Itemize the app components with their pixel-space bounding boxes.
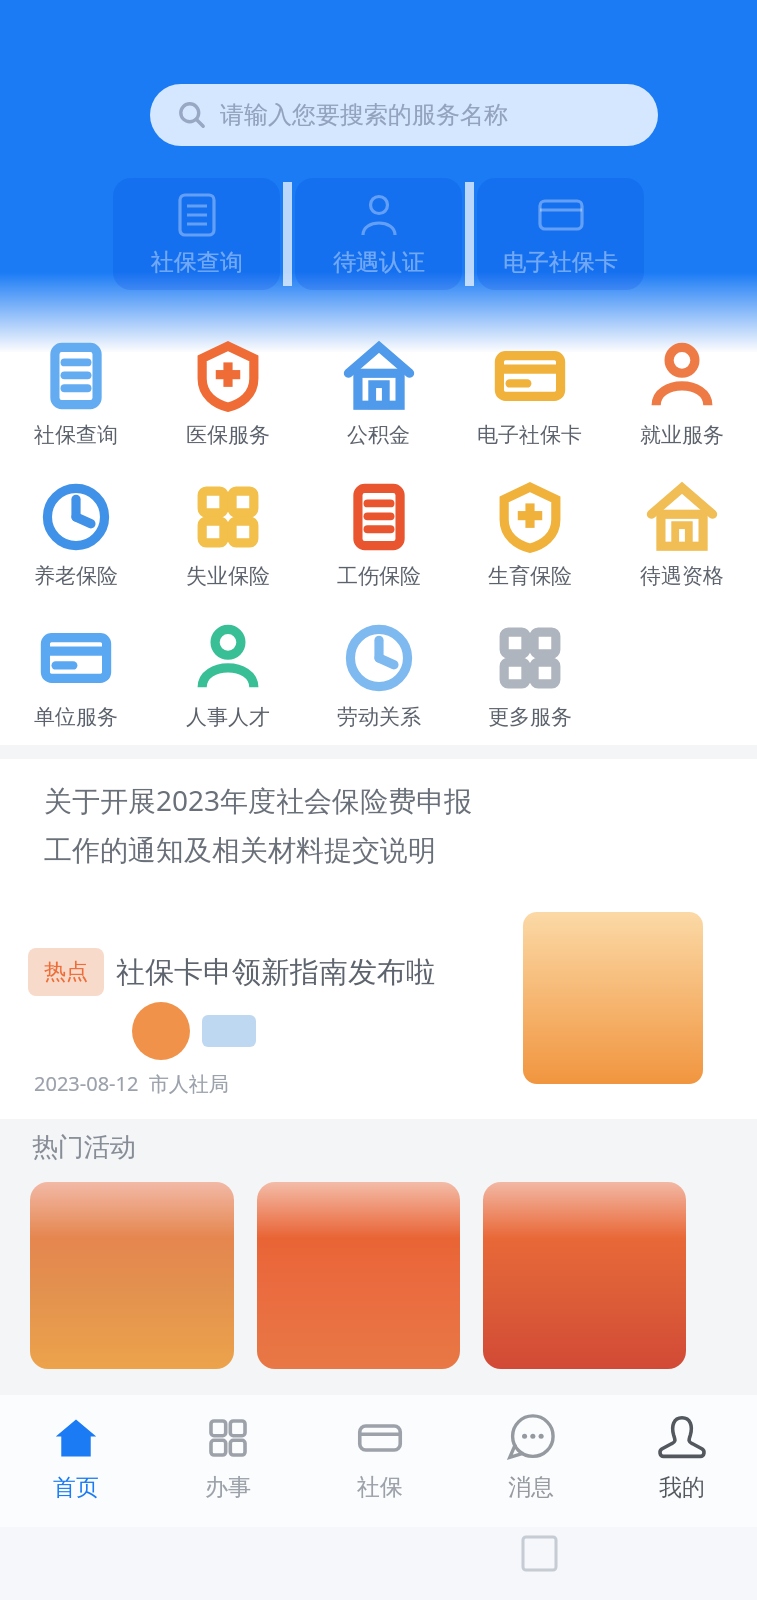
staticText: 请输入您要搜索的服务名称 xyxy=(220,100,508,130)
staticText: 热门活动 xyxy=(32,1131,136,1164)
button[interactable]: Recent apps xyxy=(523,1537,556,1570)
staticText: 2023-08-12 市人社局 xyxy=(34,1070,229,1097)
staticText: 养老保险 xyxy=(34,563,118,589)
other: Social security card xyxy=(357,1415,403,1461)
button[interactable]: 电子社保卡 xyxy=(454,342,605,483)
staticText: 劳动关系 xyxy=(337,704,421,730)
staticText: 公积金 xyxy=(347,422,410,448)
staticText: 首页 xyxy=(53,1473,99,1502)
button[interactable]: 待遇认证 xyxy=(295,178,462,290)
button[interactable]: 公积金 xyxy=(303,342,454,483)
button[interactable]: 劳动关系 xyxy=(303,624,454,745)
button[interactable]: Home xyxy=(0,1415,152,1502)
button[interactable] xyxy=(483,1182,686,1369)
staticText: 办事 xyxy=(205,1473,251,1502)
staticText: 待遇认证 xyxy=(333,248,425,277)
button[interactable]: Services xyxy=(152,1415,304,1502)
button[interactable]: Messages xyxy=(455,1415,606,1502)
other: Search xyxy=(178,101,206,129)
staticText: 失业保险 xyxy=(186,563,270,589)
button[interactable]: 待遇资格 xyxy=(606,483,757,624)
staticText: 就业服务 xyxy=(640,422,724,448)
staticText: 社保 xyxy=(357,1473,403,1502)
staticText: 电子社保卡 xyxy=(477,422,582,448)
button[interactable]: 社保查询 xyxy=(0,342,151,483)
button[interactable]: 更多服务 xyxy=(454,624,605,745)
other: Services xyxy=(205,1415,251,1461)
staticText: 医保服务 xyxy=(186,422,270,448)
button[interactable]: Profile xyxy=(606,1415,757,1502)
button[interactable]: Social security card xyxy=(304,1415,455,1502)
staticText: 工伤保险 xyxy=(337,563,421,589)
button[interactable] xyxy=(257,1182,460,1369)
button[interactable]: 工伤保险 xyxy=(303,483,454,624)
button[interactable]: 电子社保卡 xyxy=(477,178,644,290)
button[interactable]: 单位服务 xyxy=(0,624,151,745)
button[interactable] xyxy=(30,1182,234,1369)
button[interactable]: 生育保险 xyxy=(454,483,605,624)
other: Messages xyxy=(508,1415,554,1461)
button[interactable]: 社保查询 xyxy=(113,178,280,290)
button[interactable]: 人事人才 xyxy=(152,624,303,745)
other: Home xyxy=(53,1415,99,1461)
button[interactable]: Search xyxy=(150,84,658,146)
button[interactable]: 养老保险 xyxy=(0,483,151,624)
staticText: 关于开展2023年度社会保险费申报 xyxy=(44,781,473,819)
staticText: 更多服务 xyxy=(488,704,572,730)
staticText: 生育保险 xyxy=(488,563,572,589)
staticText: 消息 xyxy=(508,1473,554,1502)
staticText: 人事人才 xyxy=(186,704,270,730)
other: Profile xyxy=(659,1415,705,1461)
staticText: 社保卡申领新指南发布啦 xyxy=(116,954,435,991)
button[interactable]: 医保服务 xyxy=(152,342,303,483)
button[interactable]: 失业保险 xyxy=(152,483,303,624)
staticText: 电子社保卡 xyxy=(503,248,618,277)
staticText: 工作的通知及相关材料提交说明 xyxy=(44,833,436,868)
button[interactable]: 就业服务 xyxy=(606,342,757,483)
staticText: 待遇资格 xyxy=(640,563,724,589)
staticText: 热点 xyxy=(44,958,88,986)
staticText: 社保查询 xyxy=(34,422,118,448)
staticText: 我的 xyxy=(659,1473,705,1502)
staticText: 社保查询 xyxy=(151,248,243,277)
staticText: 单位服务 xyxy=(34,704,118,730)
